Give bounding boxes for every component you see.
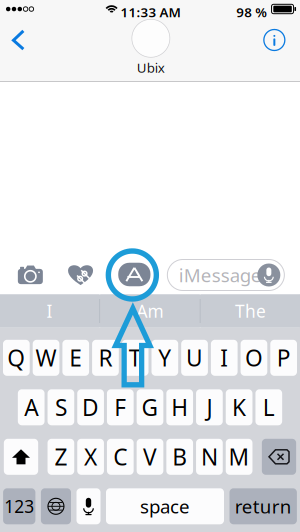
staticText: Am (136, 299, 163, 322)
staticText: R (98, 343, 112, 373)
staticText: L (263, 392, 275, 422)
staticText: H (171, 392, 188, 422)
button[interactable]: Camera (9, 255, 51, 295)
button[interactable]: I (211, 340, 238, 376)
button[interactable]: D (77, 389, 104, 425)
staticText: 11:33 AM (120, 3, 180, 21)
button[interactable]: Q (3, 340, 30, 376)
button[interactable]: L (255, 389, 282, 425)
button[interactable]: C (107, 439, 134, 475)
staticText: J (206, 392, 212, 422)
staticText: M (229, 442, 250, 472)
staticText: N (201, 442, 218, 472)
button[interactable]: Details (256, 19, 292, 61)
staticText: F (114, 392, 126, 422)
staticText: iMessage (179, 263, 262, 287)
button[interactable]: W (33, 340, 59, 376)
button[interactable]: V (137, 439, 163, 475)
staticText: B (172, 442, 187, 472)
button[interactable]: Y (151, 340, 178, 376)
staticText: E (69, 343, 82, 373)
button[interactable]: 123 (3, 488, 35, 524)
staticText: return (235, 494, 292, 519)
staticText: P (277, 343, 291, 373)
staticText: I (220, 343, 228, 373)
button[interactable]: F (107, 389, 134, 425)
button[interactable]: Digital Touch (60, 255, 102, 295)
button[interactable]: Change keyboard (41, 488, 71, 524)
staticText: I (47, 299, 53, 322)
button[interactable]: T (122, 340, 148, 376)
button[interactable]: S (48, 389, 74, 425)
staticText: X (84, 442, 97, 472)
staticText: V (143, 442, 157, 472)
staticText: G (141, 392, 158, 422)
button[interactable]: The (201, 294, 300, 327)
staticText: Ubix (137, 59, 165, 76)
button[interactable]: B (166, 439, 193, 475)
staticText: 98 % (236, 3, 267, 21)
button[interactable]: U (181, 340, 208, 376)
button[interactable]: Ubix (111, 19, 191, 76)
button[interactable]: Delete (262, 439, 296, 475)
staticText: U (186, 343, 203, 373)
staticText: S (55, 392, 67, 422)
button[interactable]: X (77, 439, 104, 475)
button[interactable]: M (226, 439, 252, 475)
staticText: Q (7, 343, 25, 373)
button[interactable]: G (137, 389, 163, 425)
staticText: Y (158, 343, 171, 373)
staticText: T (129, 343, 142, 373)
button[interactable]: App Store (113, 254, 155, 294)
button[interactable]: P (270, 340, 297, 376)
button[interactable]: K (226, 389, 252, 425)
staticText: D (82, 392, 99, 422)
button[interactable]: N (196, 439, 223, 475)
button[interactable]: R (92, 340, 119, 376)
button[interactable]: O (241, 340, 267, 376)
button[interactable]: return (229, 488, 297, 524)
staticText: 123 (4, 495, 34, 518)
button[interactable]: Dictate (76, 488, 100, 524)
staticText: C (113, 442, 127, 472)
button[interactable]: Back (3, 19, 39, 61)
button[interactable]: Z (48, 439, 74, 475)
button[interactable]: Am (100, 294, 200, 327)
button[interactable]: A (18, 389, 45, 425)
staticText: W (36, 343, 57, 373)
button[interactable]: J (196, 389, 223, 425)
staticText: The (235, 299, 266, 322)
button[interactable]: E (62, 340, 89, 376)
button[interactable]: iMessage (167, 259, 284, 290)
staticText: space (140, 494, 190, 519)
staticText: K (232, 392, 246, 422)
staticText: A (24, 392, 38, 422)
staticText: O (245, 343, 263, 373)
button[interactable]: H (166, 389, 193, 425)
staticText: Z (54, 442, 67, 472)
button[interactable]: space (106, 488, 224, 524)
button[interactable]: Shift (4, 439, 38, 475)
button[interactable]: I (0, 294, 99, 327)
